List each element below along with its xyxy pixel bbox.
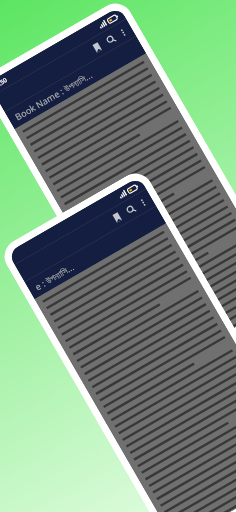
staticText: 8:50 — [0, 76, 9, 89]
button[interactable]: Bookmarks — [86, 36, 107, 58]
staticText: Book Name : উপন্যাসি... — [13, 68, 95, 122]
button[interactable]: Search — [119, 198, 141, 220]
button[interactable]: Bookmarks — [106, 206, 127, 228]
staticText: e : উপন্যাসি... — [33, 260, 76, 292]
button[interactable]: More options — [134, 194, 151, 211]
button[interactable]: Search — [99, 28, 121, 50]
button[interactable]: More options — [114, 24, 131, 41]
